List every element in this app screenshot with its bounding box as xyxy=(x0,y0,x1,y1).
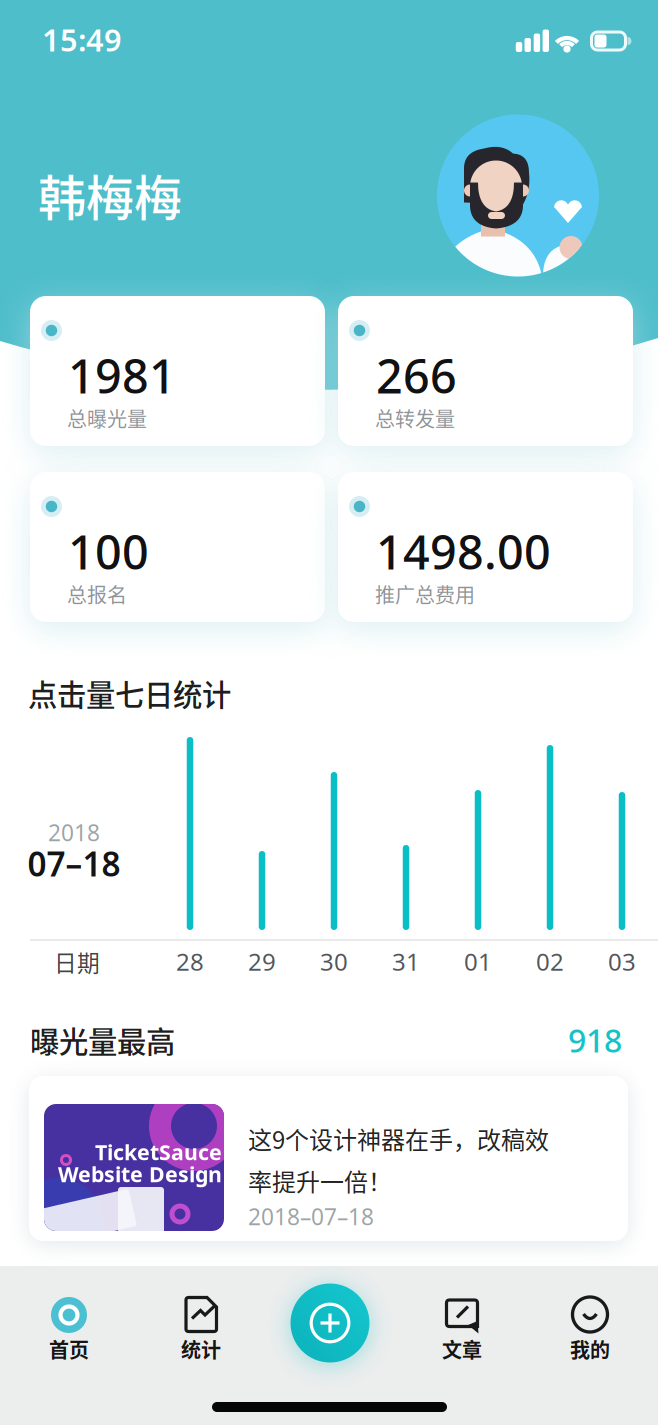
staticText: 2018–07–18 xyxy=(248,1201,374,1231)
staticText: Website Design xyxy=(58,1160,222,1188)
staticText: 统计 xyxy=(181,1334,221,1363)
staticText: 01 xyxy=(464,946,492,977)
staticText: 31 xyxy=(392,946,420,977)
staticText: 03 xyxy=(608,946,636,977)
button[interactable]: 个人资料 xyxy=(437,114,599,276)
staticText: 韩梅梅 xyxy=(38,160,182,229)
staticText: 推广总费用 xyxy=(375,579,475,608)
button[interactable]: 我的 xyxy=(568,1292,612,1336)
staticText: 1981 xyxy=(68,344,176,406)
button[interactable]: 首页 xyxy=(49,1334,89,1363)
staticText: 07–18 xyxy=(27,841,120,886)
staticText: 15:49 xyxy=(42,19,122,60)
button[interactable]: 统计 xyxy=(181,1334,221,1363)
staticText: 文章 xyxy=(442,1334,482,1363)
staticText: 2018 xyxy=(48,817,100,847)
staticText: 266 xyxy=(376,344,457,406)
staticText: 100 xyxy=(68,520,149,582)
staticText: 918 xyxy=(568,1019,622,1061)
button[interactable]: 统计 xyxy=(179,1292,223,1336)
button[interactable]: 文章 xyxy=(440,1293,484,1337)
staticText: 日期 xyxy=(54,945,100,978)
staticText: 首页 xyxy=(49,1334,89,1363)
staticText: 02 xyxy=(536,946,564,977)
staticText: TicketSauce xyxy=(95,1138,222,1166)
staticText: 率提升一倍！ xyxy=(248,1163,392,1198)
staticText: 29 xyxy=(248,946,276,977)
button[interactable]: 我的 xyxy=(570,1334,610,1363)
button[interactable]: 这9个设计神器在手，改稿效率提升一倍！ xyxy=(29,1076,628,1241)
staticText: 1498.00 xyxy=(376,520,551,582)
staticText: 总转发量 xyxy=(375,403,455,432)
staticText: 28 xyxy=(176,946,204,977)
staticText: 30 xyxy=(320,946,348,977)
staticText: 点击量七日统计 xyxy=(28,672,231,714)
staticText: 这9个设计神器在手，改稿效 xyxy=(248,1121,549,1156)
button[interactable]: 文章 xyxy=(442,1334,482,1363)
staticText: 我的 xyxy=(570,1334,610,1363)
staticText: 总曝光量 xyxy=(67,403,147,432)
button[interactable]: 发布 xyxy=(290,1283,369,1362)
staticText: 总报名 xyxy=(67,579,127,608)
button[interactable]: 首页 xyxy=(51,1297,87,1333)
staticText: 曝光量最高 xyxy=(30,1019,175,1061)
